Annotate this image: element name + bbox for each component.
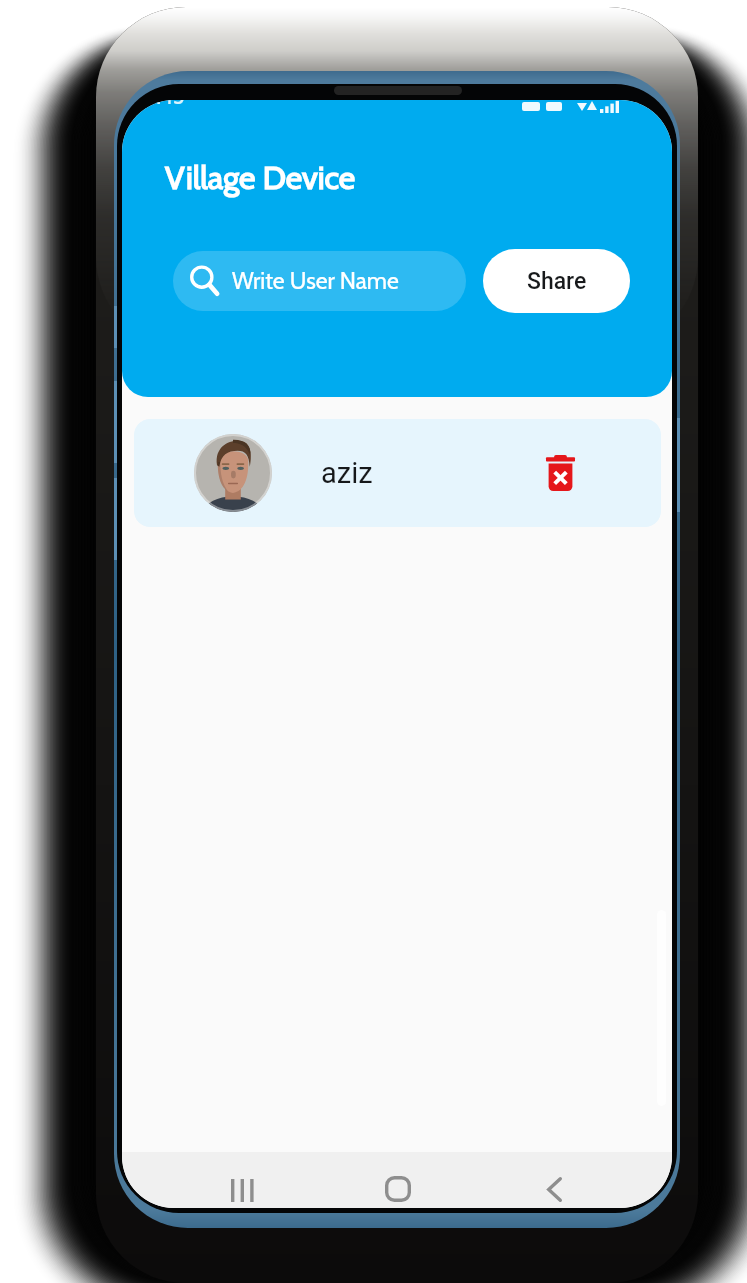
staticText: Write User Name [232,267,399,295]
staticText: Share [527,268,587,295]
button[interactable]: Delete aziz [532,445,588,501]
button[interactable]: aziz [134,419,661,527]
staticText: 10:45 [135,100,185,110]
button[interactable]: Home [362,1152,434,1208]
button[interactable]: Share [483,249,630,313]
button[interactable]: Back [518,1152,590,1208]
staticText: Village Device [165,158,356,197]
button[interactable]: Write User Name [173,251,466,311]
button[interactable]: Recent apps [206,1152,278,1208]
staticText: aziz [321,456,373,490]
